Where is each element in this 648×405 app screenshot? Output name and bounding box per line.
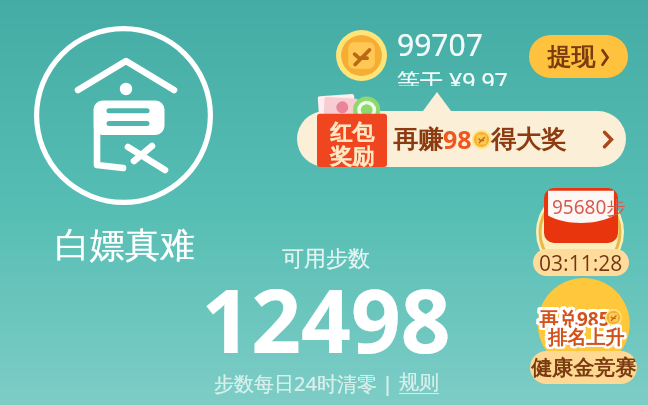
staticText: 步数每日24时清零 | xyxy=(214,370,399,397)
staticText: 再兑985 xyxy=(536,306,607,332)
staticText: 再兑985 xyxy=(537,303,608,329)
staticText: 健康金竞赛 xyxy=(531,355,636,381)
staticText: 排名上升 xyxy=(549,323,625,347)
staticText: 排名上升 xyxy=(548,326,624,350)
staticText: 奖励 xyxy=(330,143,374,171)
staticText: 再兑985 xyxy=(537,308,608,334)
staticText: 等于 ¥9.97 xyxy=(397,65,508,86)
staticText: 红包 xyxy=(330,119,374,147)
staticText: 再兑985 xyxy=(539,306,610,332)
staticText: 排名上升 xyxy=(546,328,622,352)
staticText: 再兑985 xyxy=(540,303,611,329)
staticText: 再兑985 xyxy=(539,303,610,329)
staticText: 排名上升 xyxy=(545,327,621,351)
staticText: 排名上升 xyxy=(545,326,621,350)
staticText: 99707 xyxy=(397,24,483,65)
staticText: 可用步数 xyxy=(180,245,472,273)
button[interactable]: 规则 xyxy=(399,370,439,395)
staticText: 排名上升 xyxy=(550,326,626,350)
staticText: 再兑985 xyxy=(541,306,612,332)
staticText: 再兑985 xyxy=(536,307,607,333)
staticText: 再兑985 xyxy=(540,308,611,334)
staticText: 白嫖真难 xyxy=(55,223,195,267)
staticText: 得大奖 xyxy=(491,124,566,155)
staticText: 再兑985 xyxy=(541,304,612,330)
button[interactable]: 再赚 xyxy=(297,111,626,167)
staticText: 排名上升 xyxy=(550,327,626,351)
staticText: 12498 xyxy=(180,260,472,378)
button[interactable]: 提现 xyxy=(529,35,628,78)
button[interactable]: 健康金竞赛 xyxy=(524,283,644,388)
button[interactable]: 金币余额 99707 xyxy=(336,24,508,86)
staticText: 排名上升 xyxy=(546,323,622,347)
staticText: 排名上升 xyxy=(548,328,624,352)
staticText: 排名上升 xyxy=(550,324,626,348)
staticText: 再兑985 xyxy=(536,304,607,330)
staticText: 排名上升 xyxy=(548,323,624,347)
button[interactable]: 步数红包 xyxy=(530,185,634,280)
staticText: 排名上升 xyxy=(549,328,625,352)
staticText: 98 xyxy=(443,122,472,156)
staticText: 再赚 xyxy=(393,124,443,155)
staticText: 再兑985 xyxy=(541,307,612,333)
staticText: 95680步 xyxy=(552,194,626,220)
staticText: 03:11:28 xyxy=(539,249,623,276)
staticText: 再兑985 xyxy=(539,308,610,334)
staticText: 提现 xyxy=(547,42,595,72)
staticText: 排名上升 xyxy=(545,324,621,348)
